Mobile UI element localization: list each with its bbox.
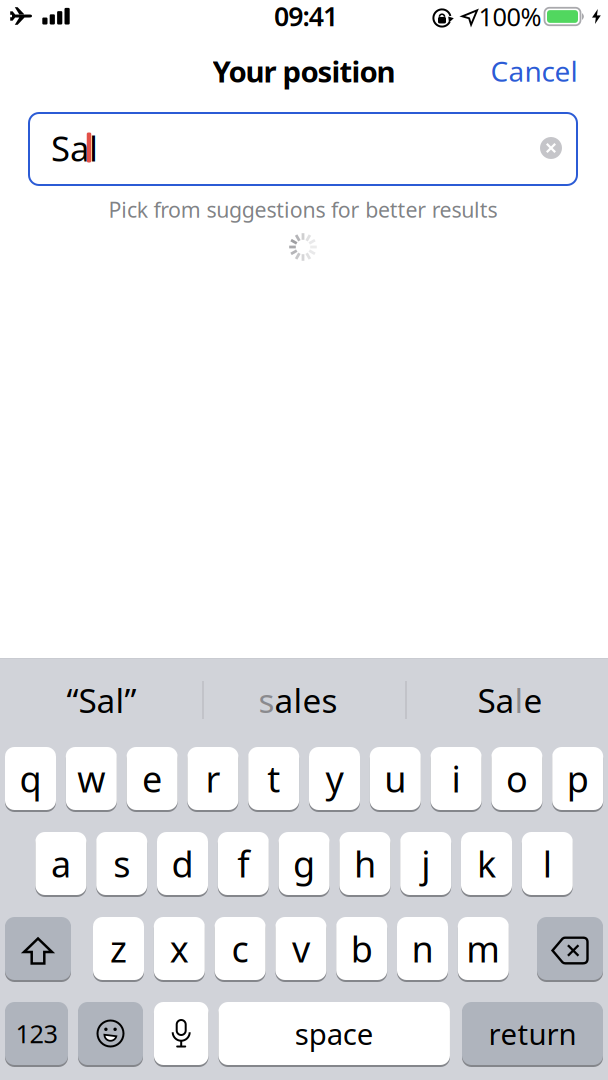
button[interactable]: y [309, 746, 360, 811]
staticText: o [506, 755, 528, 802]
button[interactable]: v [275, 916, 326, 981]
button[interactable]: j [400, 831, 451, 896]
staticText: s [258, 678, 274, 722]
staticText: h [354, 840, 376, 887]
button[interactable]: t [248, 746, 299, 811]
staticText: b [351, 925, 373, 972]
staticText: u [384, 755, 406, 802]
button[interactable]: Delete [537, 916, 603, 981]
button[interactable]: Sa [411, 669, 608, 731]
button[interactable]: s [96, 831, 147, 896]
staticText: q [19, 755, 41, 802]
button[interactable]: l [522, 831, 573, 896]
button[interactable]: r [187, 746, 238, 811]
staticText: 123 [15, 1017, 57, 1050]
button[interactable]: k [461, 831, 512, 896]
button[interactable]: n [397, 916, 448, 981]
staticText: v [292, 925, 310, 972]
button[interactable]: Dictation [154, 1001, 208, 1066]
button[interactable]: c [215, 916, 266, 981]
button[interactable]: Emoji [78, 1001, 143, 1066]
staticText: Cancel [490, 52, 577, 90]
button[interactable]: return [462, 1001, 603, 1066]
staticText: s [113, 840, 130, 887]
staticText: t [267, 755, 280, 802]
button[interactable]: s [198, 669, 398, 731]
staticText: space [295, 1014, 374, 1053]
button[interactable]: o [491, 746, 542, 811]
staticText: n [411, 925, 433, 972]
staticText: f [237, 840, 249, 887]
button[interactable]: Shift [5, 916, 71, 981]
staticText: z [110, 925, 127, 972]
staticText: m [466, 925, 500, 972]
staticText: l [543, 840, 552, 887]
staticText: i [452, 755, 461, 802]
button[interactable]: a [35, 831, 86, 896]
button[interactable]: u [370, 746, 421, 811]
staticText: e [142, 755, 162, 802]
staticText: e [523, 678, 542, 722]
button[interactable]: e [127, 746, 178, 811]
staticText: Pick from suggestions for better results [108, 195, 498, 224]
button[interactable]: p [552, 746, 603, 811]
staticText: j [421, 840, 430, 887]
button[interactable]: f [218, 831, 269, 896]
staticText: c [232, 925, 249, 972]
button[interactable]: z [93, 916, 144, 981]
button[interactable]: 123 [5, 1001, 68, 1066]
button[interactable]: Clear text [540, 137, 562, 159]
staticText: 09:41 [274, 0, 338, 34]
button[interactable]: “Sal” [1, 669, 201, 731]
button[interactable]: i [431, 746, 482, 811]
staticText: g [293, 840, 315, 887]
staticText: x [170, 925, 189, 972]
staticText: d [171, 840, 193, 887]
staticText: a [51, 840, 71, 887]
staticText: return [488, 1014, 576, 1053]
staticText: r [205, 755, 220, 802]
staticText: 100% [478, 0, 541, 33]
button[interactable]: d [157, 831, 208, 896]
staticText: k [477, 840, 496, 887]
button[interactable]: q [5, 746, 56, 811]
button[interactable]: g [279, 831, 330, 896]
staticText: ales [274, 678, 337, 722]
button[interactable]: m [458, 916, 509, 981]
staticText: Sal [51, 125, 98, 171]
staticText: l [514, 678, 523, 722]
button[interactable]: b [336, 916, 387, 981]
staticText: Sa [477, 678, 514, 722]
staticText: Your position [212, 51, 395, 90]
button[interactable]: space [218, 1001, 450, 1066]
staticText: “Sal” [66, 678, 136, 722]
staticText: p [567, 755, 589, 802]
button[interactable]: h [339, 831, 390, 896]
button[interactable]: w [66, 746, 117, 811]
button[interactable]: Cancel [490, 52, 577, 90]
staticText: y [325, 755, 343, 802]
staticText: w [77, 755, 105, 802]
button[interactable]: x [154, 916, 205, 981]
